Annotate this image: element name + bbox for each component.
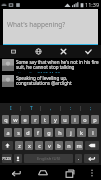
staticText: v xyxy=(48,142,51,149)
button[interactable]: I xyxy=(0,103,21,113)
button[interactable]: Speaking of leveling up, congratulations… xyxy=(0,74,101,90)
staticText: q xyxy=(4,116,8,123)
staticText: n xyxy=(67,142,71,149)
staticText: stigpedia · 04:05 11:30 xyxy=(16,71,60,73)
staticText: i xyxy=(74,116,76,123)
button[interactable]: Cancel xyxy=(51,45,76,58)
button[interactable]: Enter xyxy=(84,154,99,163)
staticText: I xyxy=(10,105,12,112)
staticText: z xyxy=(18,142,21,149)
button[interactable]: What's happening? xyxy=(3,9,98,44)
button[interactable]: T xyxy=(21,103,41,113)
staticText: 11:39 xyxy=(85,1,100,8)
staticText: d xyxy=(26,129,30,136)
staticText: Speaking of leveling up, congratulations… xyxy=(16,75,99,87)
button[interactable]: Home xyxy=(36,166,50,180)
button[interactable]: . xyxy=(75,154,82,163)
staticText: k xyxy=(80,129,83,136)
button[interactable]: h xyxy=(55,128,64,137)
staticText: a xyxy=(6,129,10,136)
staticText: ?123 xyxy=(2,156,12,162)
button[interactable]: Shift xyxy=(2,141,13,150)
button[interactable]: i xyxy=(71,115,79,124)
button[interactable]: Tweet xyxy=(76,45,101,58)
button[interactable]: q xyxy=(2,115,9,124)
staticText: r xyxy=(34,116,37,123)
button[interactable]: Recents xyxy=(63,166,77,180)
button[interactable]: English (US) xyxy=(24,154,73,163)
button[interactable]: r xyxy=(31,115,39,124)
button[interactable]: v xyxy=(45,141,53,150)
button[interactable]: , xyxy=(41,103,61,113)
button[interactable]: x xyxy=(25,141,33,150)
button[interactable]: k xyxy=(77,128,86,137)
staticText: j xyxy=(70,129,72,136)
staticText: . xyxy=(78,155,80,162)
button[interactable]: Add photo xyxy=(0,45,26,58)
staticText: t xyxy=(44,116,46,123)
staticText: m xyxy=(76,142,82,149)
button[interactable]: ?123 xyxy=(2,154,12,163)
staticText: , xyxy=(50,105,52,112)
staticText: T xyxy=(30,105,33,112)
button[interactable]: g xyxy=(44,128,53,137)
button[interactable]: e xyxy=(21,115,29,124)
button[interactable]: Back xyxy=(9,166,23,180)
button[interactable]: p xyxy=(91,115,99,124)
staticText: l xyxy=(92,129,94,136)
staticText: f xyxy=(37,129,39,136)
button[interactable]: Voice input xyxy=(14,154,22,163)
staticText: h xyxy=(58,129,62,136)
button[interactable]: t xyxy=(41,115,49,124)
button[interactable]: a xyxy=(4,128,12,137)
button[interactable]: z xyxy=(15,141,23,150)
staticText: s xyxy=(17,129,20,136)
staticText: o xyxy=(83,116,87,123)
button[interactable]: m xyxy=(75,141,83,150)
button[interactable]: b xyxy=(55,141,63,150)
button[interactable]: Some say that when he's not in his fire … xyxy=(0,58,101,74)
staticText: ; xyxy=(90,105,92,112)
button[interactable]: o xyxy=(81,115,89,124)
staticText: What's happening? xyxy=(7,20,66,29)
button[interactable]: f xyxy=(34,128,42,137)
staticText: w xyxy=(13,116,18,123)
staticText: Some say that when he's not in his fire … xyxy=(16,59,99,71)
button[interactable]: y xyxy=(51,115,59,124)
button[interactable]: s xyxy=(14,128,22,137)
staticText: English (US) xyxy=(37,156,61,162)
button[interactable]: : xyxy=(61,103,81,113)
staticText: : xyxy=(70,105,72,112)
staticText: e xyxy=(23,116,27,123)
staticText: b xyxy=(57,142,61,149)
staticText: x xyxy=(28,142,31,149)
staticText: u xyxy=(63,116,67,123)
staticText: g xyxy=(47,129,51,136)
button[interactable]: j xyxy=(66,128,75,137)
button[interactable]: c xyxy=(35,141,43,150)
button[interactable]: Location xyxy=(26,45,51,58)
staticText: c xyxy=(38,142,41,149)
button[interactable]: d xyxy=(24,128,32,137)
button[interactable]: Backspace xyxy=(85,141,99,150)
button[interactable]: l xyxy=(88,128,97,137)
button[interactable]: n xyxy=(65,141,73,150)
staticText: p xyxy=(93,116,97,123)
staticText: y xyxy=(54,116,57,123)
button[interactable]: w xyxy=(11,115,19,124)
button[interactable]: ; xyxy=(81,103,101,113)
button[interactable]: More options xyxy=(85,166,99,180)
button[interactable]: u xyxy=(61,115,69,124)
